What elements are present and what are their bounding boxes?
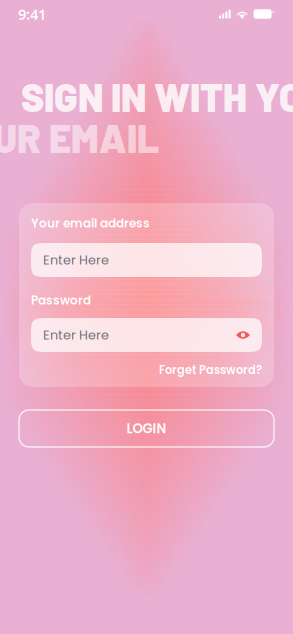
staticText: SIGN IN WITH YOU <box>21 73 293 120</box>
button[interactable]: Enter Here <box>31 318 262 352</box>
staticText: Your email address <box>31 215 150 232</box>
staticText: UR EMAIL <box>0 114 159 161</box>
staticText: 9:41 <box>18 4 46 24</box>
button[interactable]: Forget Password? <box>31 363 262 377</box>
staticText: Forget Password? <box>159 362 262 378</box>
staticText: LOGIN <box>126 419 166 438</box>
button[interactable]: Enter Here <box>31 243 262 277</box>
staticText: Password <box>31 292 91 309</box>
staticText: Enter Here <box>43 326 109 344</box>
staticText: Enter Here <box>43 251 109 269</box>
button[interactable]: LOGIN <box>19 410 274 447</box>
